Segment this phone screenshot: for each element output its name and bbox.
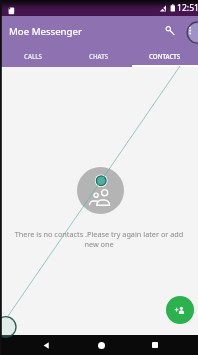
button[interactable]: Back bbox=[36, 335, 56, 355]
button[interactable]: Search bbox=[157, 20, 179, 42]
button[interactable]: CHATS bbox=[66, 46, 132, 65]
staticText: CHATS bbox=[89, 52, 109, 60]
button[interactable]: More options bbox=[181, 20, 198, 42]
button[interactable]: CONTACTS bbox=[132, 46, 198, 65]
button[interactable]: CALLS bbox=[0, 46, 66, 65]
staticText: 12:51 bbox=[177, 2, 198, 14]
button[interactable]: Home bbox=[91, 335, 111, 355]
staticText: CALLS bbox=[24, 52, 42, 60]
staticText: Moe Messenger bbox=[9, 25, 83, 38]
button[interactable]: Add contact bbox=[166, 296, 194, 324]
staticText: CONTACTS bbox=[149, 52, 181, 60]
staticText: There is no contacts .Please try again l… bbox=[7, 229, 191, 249]
button[interactable]: Recents bbox=[145, 335, 165, 355]
